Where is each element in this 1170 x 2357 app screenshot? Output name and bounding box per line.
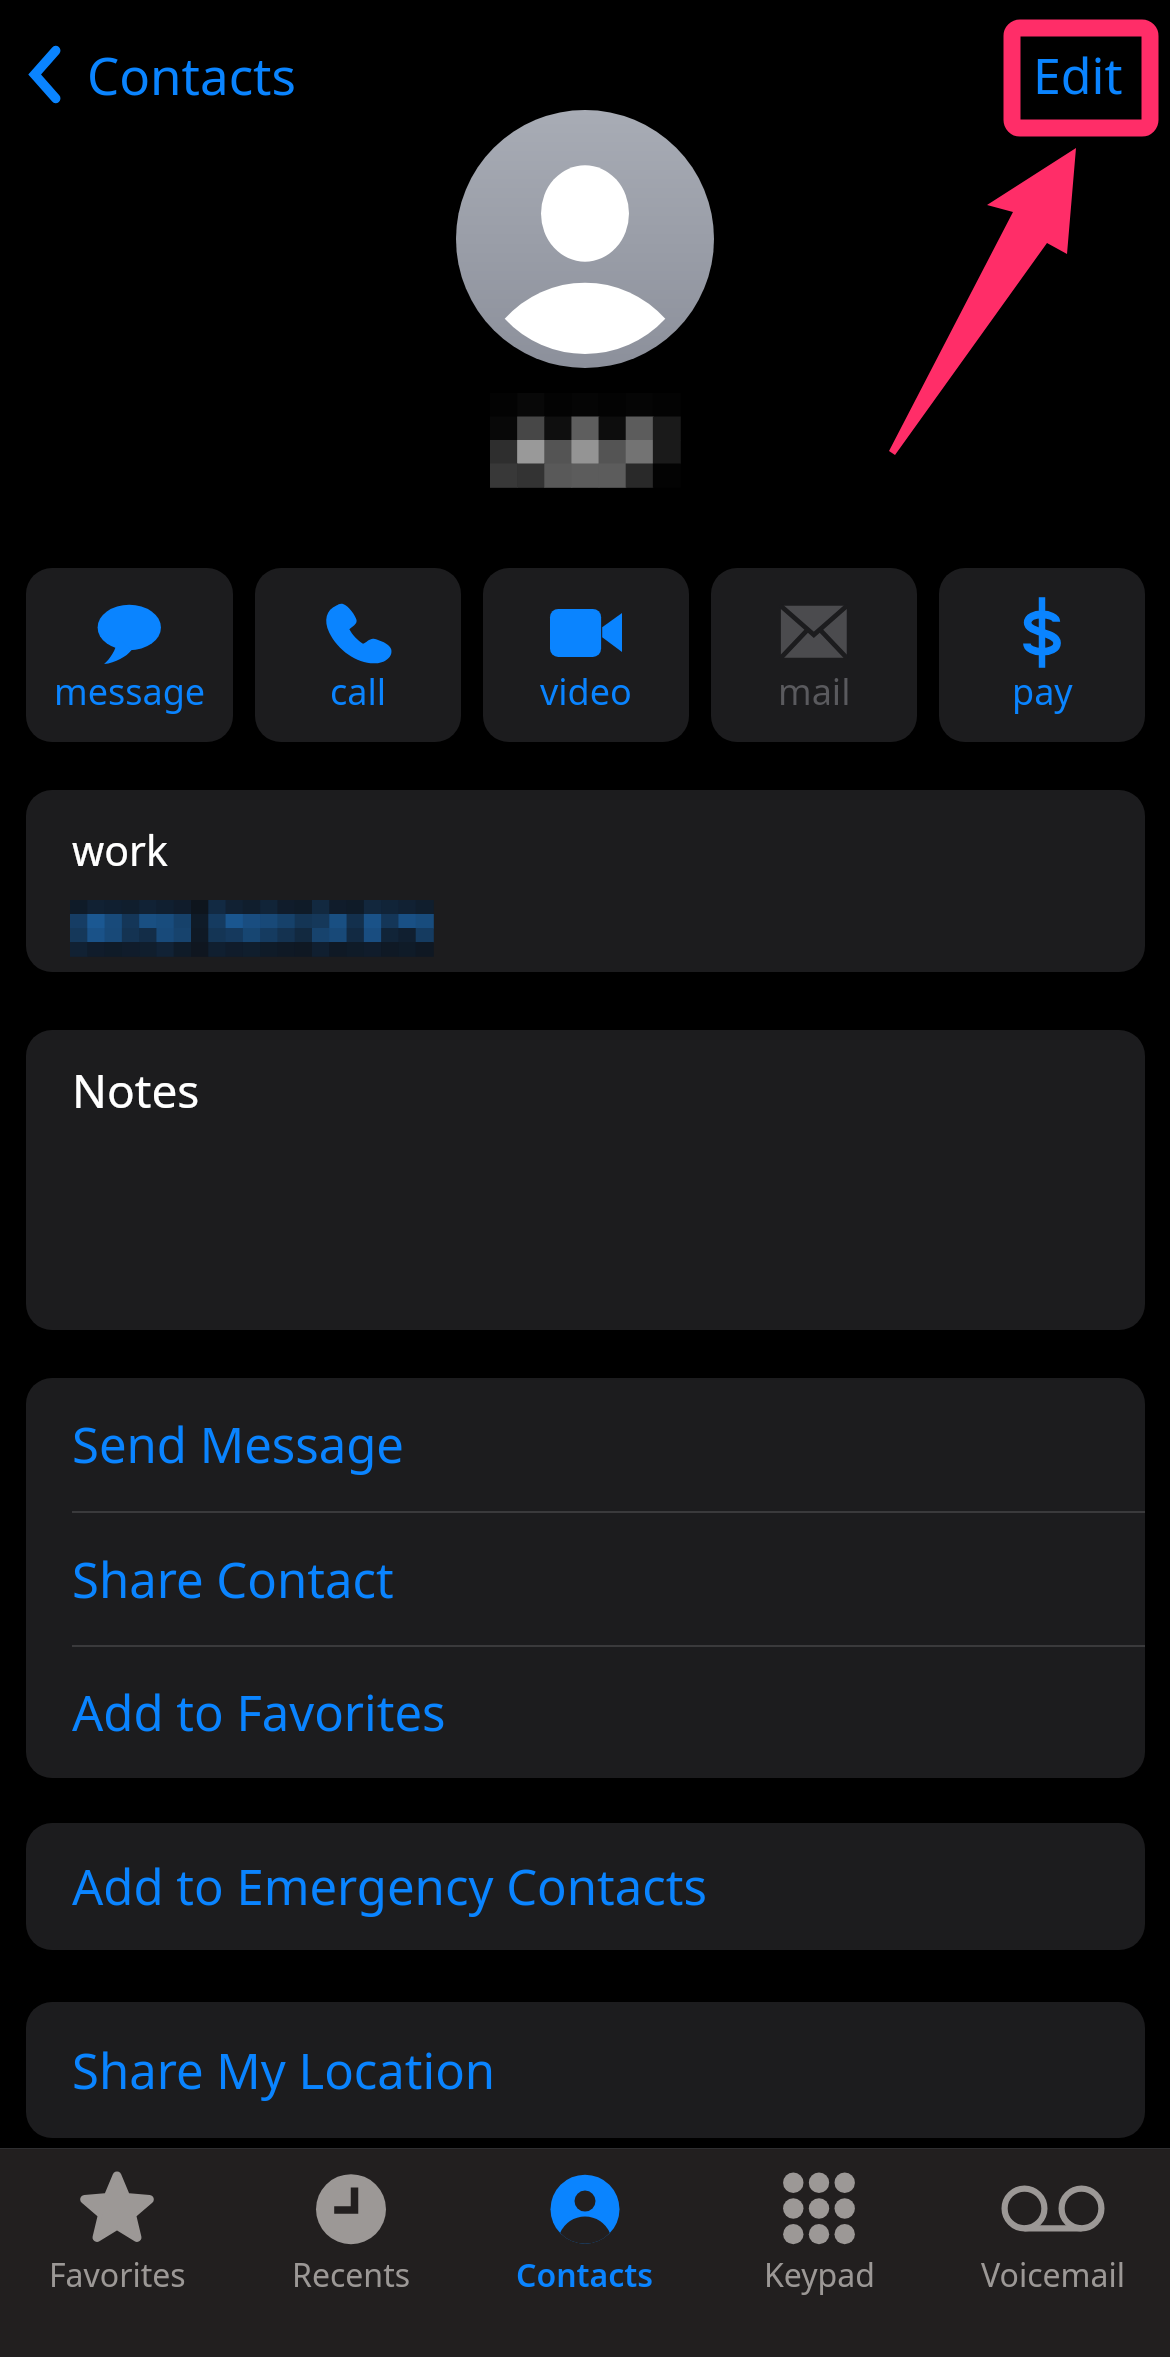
staticText: Add to Emergency Contacts (72, 1853, 707, 1920)
button[interactable]: Send Message (26, 1378, 1145, 1511)
staticText: work (72, 822, 168, 878)
button[interactable]: mail (711, 568, 917, 742)
staticText: Send Message (72, 1411, 404, 1478)
button[interactable]: work (26, 790, 1145, 972)
button[interactable]: Share Contact (26, 1513, 1145, 1645)
staticText: mail (778, 667, 851, 716)
button[interactable]: Voicemail (936, 2149, 1170, 2357)
button[interactable]: Add to Emergency Contacts (26, 1823, 1145, 1950)
staticText: Add to Favorites (72, 1679, 446, 1746)
button[interactable]: Add to Favorites (26, 1647, 1145, 1778)
staticText: Contacts (87, 40, 296, 109)
button[interactable]: Back to Contacts (11, 30, 306, 119)
button[interactable]: video (483, 568, 689, 742)
staticText: Voicemail (981, 2253, 1125, 2297)
staticText: Contacts (516, 2253, 654, 2297)
button[interactable]: Notes (26, 1030, 1145, 1330)
staticText: Notes (72, 1059, 200, 1122)
button[interactable]: Keypad (702, 2149, 936, 2357)
button[interactable]: Contacts (468, 2149, 702, 2357)
staticText: video (540, 667, 632, 716)
button[interactable]: pay (939, 568, 1145, 742)
button[interactable]: call (255, 568, 461, 742)
staticText: message (54, 667, 206, 716)
button[interactable]: Favorites (0, 2149, 234, 2357)
staticText: Edit (1033, 41, 1123, 109)
staticText: Favorites (49, 2253, 186, 2297)
staticText: Recents (292, 2253, 411, 2297)
button[interactable]: Share My Location (26, 2002, 1145, 2138)
staticText: Share My Location (72, 2037, 496, 2104)
button[interactable]: Edit (1023, 31, 1133, 119)
staticText: Keypad (764, 2253, 875, 2297)
staticText: call (330, 667, 387, 716)
button[interactable]: message (26, 568, 233, 742)
staticText: Share Contact (72, 1546, 394, 1613)
staticText: pay (1012, 667, 1073, 716)
button[interactable]: Recents (234, 2149, 468, 2357)
